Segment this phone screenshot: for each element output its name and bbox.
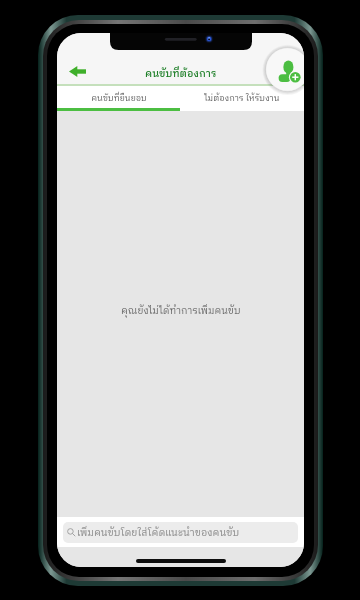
button[interactable]: เพิ่มคนขับโดยใส่โค้ดแนะนำของคนขับ: [63, 522, 298, 543]
button[interactable]: คนขับที่ยืนยอบ: [57, 86, 180, 111]
staticText: คนขับที่ยืนยอบ: [91, 92, 147, 106]
staticText: ไม่ต้องการ ให้รับงาน: [204, 92, 280, 106]
staticText: คนขับที่ต้องการ: [145, 66, 217, 83]
staticText: คุณยังไม่ได้ทำการเพิ่มคนขับ: [121, 303, 241, 319]
button[interactable]: Back: [63, 59, 91, 83]
button[interactable]: ไม่ต้องการ ให้รับงาน: [180, 86, 304, 111]
staticText: เพิ่มคนขับโดยใส่โค้ดแนะนำของคนขับ: [77, 525, 240, 541]
button[interactable]: Add driver: [263, 45, 304, 94]
